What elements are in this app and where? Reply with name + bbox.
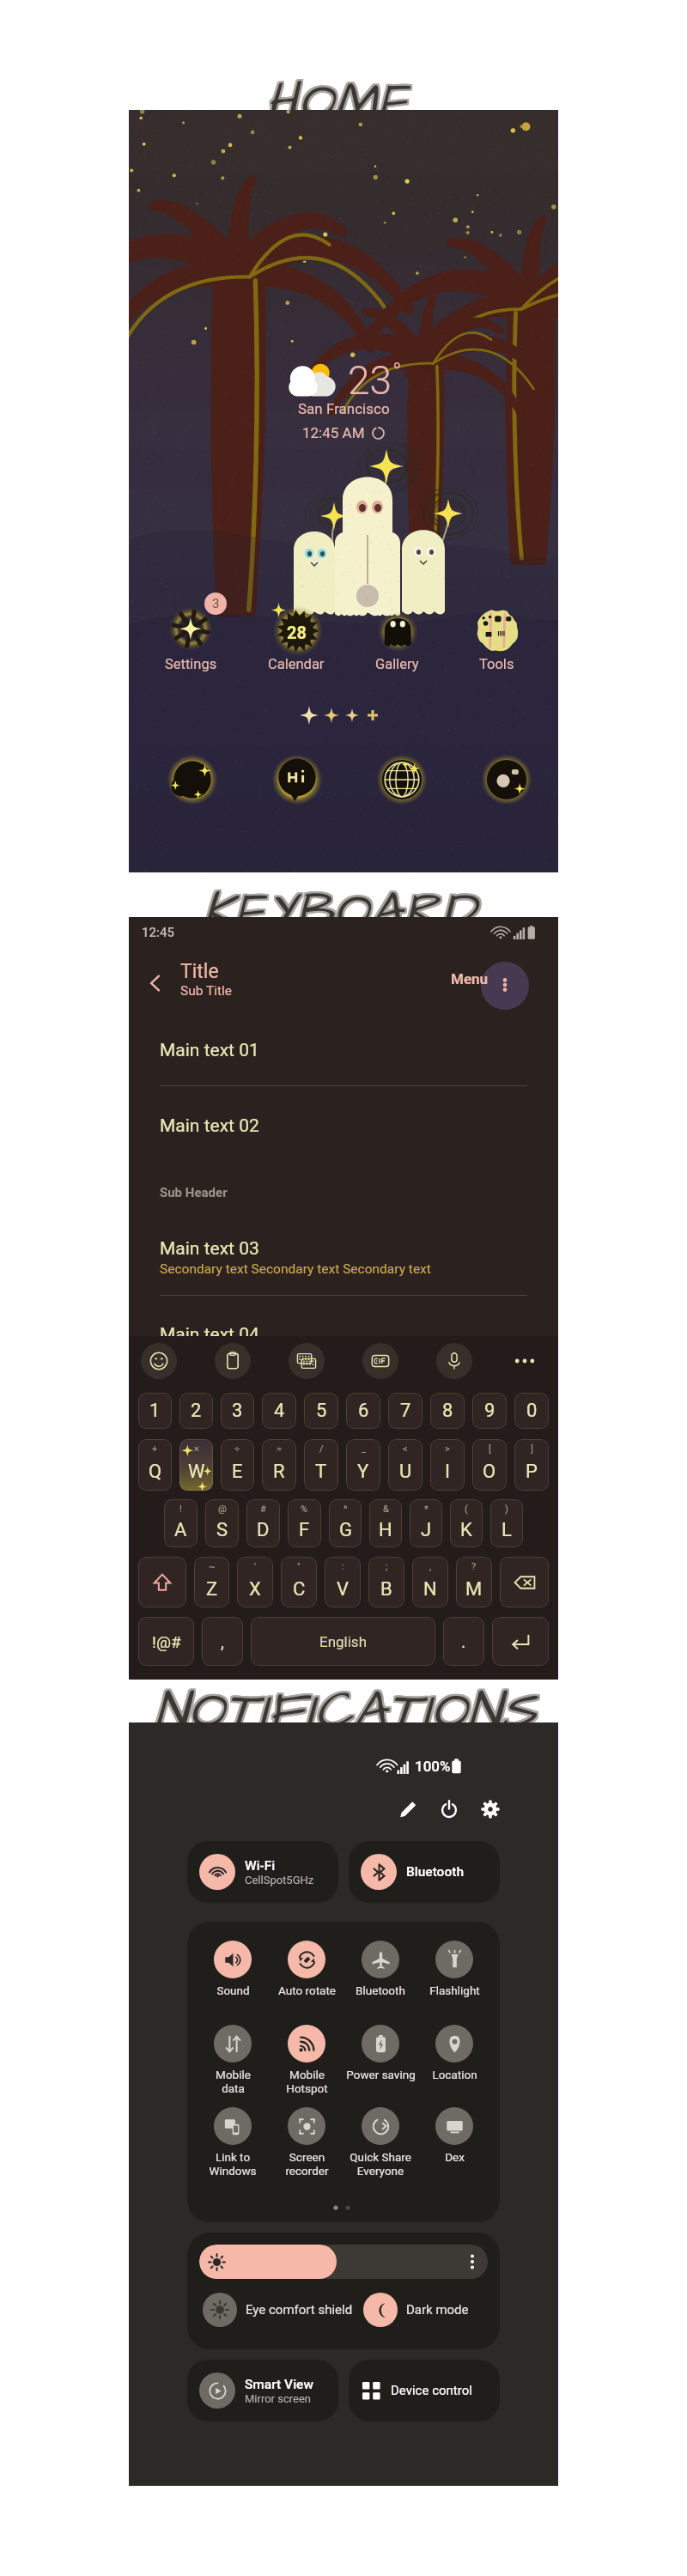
staticText: _ (362, 1443, 366, 1455)
button[interactable]: Screen recorder (270, 2107, 343, 2178)
button[interactable]: Eye comfort shield (203, 2293, 363, 2327)
button[interactable]: Keyboard modes (289, 1343, 325, 1379)
button[interactable]: Main text 02 (160, 1115, 259, 1137)
button[interactable]: # (246, 1499, 280, 1547)
button[interactable]: [ (472, 1439, 507, 1491)
button[interactable]: Tools (453, 601, 539, 672)
button[interactable]: Wi-Fi (187, 1841, 338, 1903)
button[interactable]: , (412, 1557, 448, 1607)
button[interactable]: Mobile Hotspot (270, 2025, 343, 2096)
button[interactable]: ~ (194, 1557, 229, 1607)
button[interactable]: Back (141, 969, 170, 998)
staticText: English (319, 1633, 368, 1650)
staticText: Mirror screen (245, 2392, 312, 2405)
button[interactable]: * (410, 1499, 442, 1547)
button[interactable]: Smart View (187, 2360, 338, 2421)
button[interactable]: 0 (514, 1393, 549, 1429)
button[interactable]: ÷ (221, 1439, 254, 1491)
button[interactable]: 7 (388, 1393, 423, 1429)
button[interactable]: < (388, 1439, 423, 1491)
button[interactable]: 4 (262, 1393, 296, 1429)
button[interactable]: % (288, 1499, 321, 1547)
button[interactable]: Settings (148, 601, 234, 672)
button[interactable]: Flashlight (417, 1941, 491, 1997)
staticText: 28 (287, 623, 307, 642)
button[interactable]: @ (205, 1499, 239, 1547)
button[interactable]: = (262, 1439, 296, 1491)
button[interactable]: _ (346, 1439, 380, 1491)
button[interactable]: Backspace (500, 1557, 549, 1607)
button[interactable]: ? (456, 1557, 492, 1607)
button[interactable]: : (325, 1557, 361, 1607)
button[interactable]: 9 (472, 1393, 507, 1429)
button[interactable]: GIF (362, 1343, 398, 1379)
button[interactable]: Camera (477, 750, 536, 809)
button[interactable]: Power saving (343, 2025, 417, 2081)
button[interactable]: " (281, 1557, 317, 1607)
button[interactable]: Shift (138, 1557, 186, 1607)
button[interactable]: Quick Share Everyone (343, 2107, 417, 2178)
button[interactable]: More options (494, 974, 516, 996)
staticText: Quick Share Everyone (350, 2150, 411, 2178)
button[interactable]: Calendar (253, 601, 339, 672)
button[interactable]: ; (368, 1557, 404, 1607)
button[interactable]: Location (417, 2025, 491, 2081)
button[interactable]: Messages (268, 750, 326, 809)
button[interactable]: Main text 03 (160, 1238, 431, 1277)
button[interactable]: . (443, 1617, 484, 1666)
staticText: NOTIFICATIONS (156, 1674, 539, 1747)
button[interactable]: + (138, 1439, 172, 1491)
staticText: # (260, 1504, 266, 1515)
button[interactable]: 5 (304, 1393, 338, 1429)
staticText: KEYBOARD (203, 875, 477, 946)
button[interactable]: ) (490, 1499, 523, 1547)
button[interactable]: Emoji (141, 1343, 177, 1379)
button[interactable]: Internet (373, 750, 431, 809)
button[interactable]: Dex (417, 2107, 491, 2164)
button[interactable]: , (202, 1617, 243, 1666)
button[interactable]: !@# (138, 1617, 194, 1666)
button[interactable]: 3 (221, 1393, 254, 1429)
button[interactable]: Mobile data (196, 2025, 270, 2096)
staticText: V (337, 1578, 350, 1601)
button[interactable]: ! (164, 1499, 198, 1547)
button[interactable]: Main text 01 (160, 1040, 259, 1061)
button[interactable]: & (369, 1499, 402, 1547)
button[interactable]: Bluetooth (343, 1941, 417, 1997)
button[interactable]: × (179, 1439, 213, 1491)
button[interactable]: 1 (138, 1393, 172, 1429)
button[interactable]: Device control (349, 2360, 500, 2421)
button[interactable]: Settings (477, 1796, 503, 1822)
button[interactable]: 2 (179, 1393, 213, 1429)
button[interactable]: ( (450, 1499, 483, 1547)
button[interactable]: Gallery (354, 601, 440, 672)
button[interactable]: ' (237, 1557, 273, 1607)
button[interactable]: Power (436, 1796, 462, 1822)
button[interactable]: Main text 04 (160, 1324, 259, 1346)
button[interactable]: Menu (447, 967, 492, 991)
staticText: , (429, 1561, 432, 1572)
button[interactable]: English (251, 1617, 435, 1666)
staticText: ~ (209, 1561, 216, 1572)
button[interactable]: Dark mode (363, 2293, 488, 2327)
button[interactable]: More (510, 1346, 539, 1376)
button[interactable]: Sound (196, 1941, 270, 1997)
button[interactable]: / (304, 1439, 338, 1491)
button[interactable]: ^ (329, 1499, 362, 1547)
button[interactable]: > (430, 1439, 465, 1491)
staticText: = (277, 1443, 283, 1455)
button[interactable] (199, 2245, 488, 2279)
button[interactable]: Voice input (436, 1343, 472, 1379)
button[interactable]: Auto rotate (270, 1941, 343, 1997)
staticText: Power saving (346, 2068, 416, 2081)
button[interactable]: Link to Windows (196, 2107, 270, 2178)
button[interactable]: Clipboard (215, 1343, 251, 1379)
button[interactable]: Bluetooth (349, 1841, 500, 1903)
button[interactable]: ] (514, 1439, 549, 1491)
button[interactable]: Edit (395, 1796, 421, 1822)
button[interactable]: 6 (346, 1393, 380, 1429)
button[interactable]: Enter (492, 1617, 549, 1666)
button[interactable]: Phone (163, 750, 222, 809)
staticText: HOME (268, 69, 412, 140)
button[interactable]: 8 (430, 1393, 465, 1429)
